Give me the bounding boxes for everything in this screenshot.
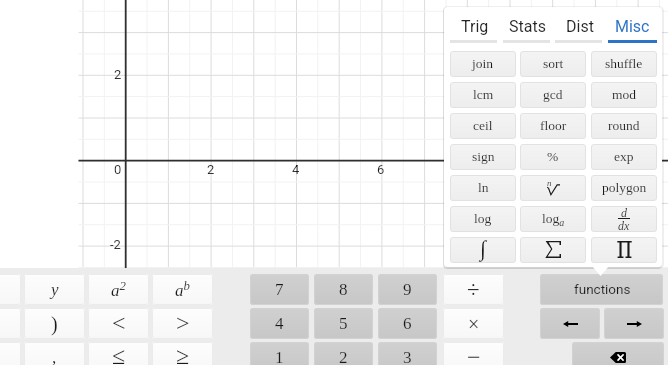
staticText: ∫ xyxy=(480,237,487,260)
other: Move left xyxy=(563,321,578,327)
button[interactable]: loga xyxy=(520,206,586,232)
button[interactable] xyxy=(591,237,657,263)
staticText: 6 xyxy=(403,314,412,333)
button[interactable]: ln xyxy=(450,175,516,201)
staticText: mod xyxy=(612,87,637,102)
button[interactable]: 8 xyxy=(314,274,373,305)
staticText: a2 xyxy=(111,279,126,300)
staticText: 4 xyxy=(275,314,284,333)
staticText: % xyxy=(547,149,559,164)
button[interactable]: × xyxy=(443,308,504,339)
button[interactable]: log xyxy=(450,206,516,232)
staticText: Trig xyxy=(461,17,489,36)
staticText: > xyxy=(176,310,190,337)
staticText: y xyxy=(51,280,59,299)
button[interactable]: < xyxy=(88,308,149,339)
staticText: sign xyxy=(472,149,495,164)
button[interactable]: polygon xyxy=(591,175,657,201)
staticText: 4 xyxy=(292,162,300,177)
button[interactable]: 4 xyxy=(250,308,309,339)
staticText: exp xyxy=(614,149,634,164)
button[interactable]: , xyxy=(24,342,85,365)
button[interactable]: 2 xyxy=(314,342,373,365)
button[interactable]: shuffle xyxy=(591,51,657,77)
staticText: round xyxy=(608,118,640,133)
button[interactable]: exp xyxy=(591,144,657,170)
button[interactable]: 7 xyxy=(250,274,309,305)
button[interactable]: functions xyxy=(540,274,663,305)
staticText: n xyxy=(547,178,552,188)
staticText: ceil xyxy=(473,118,493,133)
staticText: − xyxy=(467,344,481,365)
staticText: , xyxy=(52,348,57,365)
button[interactable]: gcd xyxy=(520,82,586,108)
staticText: join xyxy=(472,56,494,71)
staticText: × xyxy=(468,313,480,335)
button[interactable]: ab xyxy=(152,274,213,305)
staticText: 2 xyxy=(114,67,122,82)
staticText: 8 xyxy=(339,280,348,299)
button[interactable]: 9 xyxy=(378,274,437,305)
button[interactable]: Stats xyxy=(503,11,552,41)
button[interactable]: d xyxy=(591,206,657,232)
staticText: Stats xyxy=(509,17,546,36)
staticText: lcm xyxy=(473,87,494,102)
button[interactable]: Trig xyxy=(450,11,499,41)
button[interactable]: 6 xyxy=(378,308,437,339)
staticText: 1 xyxy=(275,348,284,365)
staticText: Misc xyxy=(615,17,650,36)
staticText: floor xyxy=(540,118,567,133)
staticText: 0 xyxy=(114,162,122,177)
other: Move right xyxy=(627,321,642,327)
button[interactable] xyxy=(520,237,586,263)
button[interactable]: Backspace xyxy=(572,342,664,365)
button[interactable]: 1 xyxy=(250,342,309,365)
staticText: Dist xyxy=(566,17,594,36)
staticText: ) xyxy=(51,313,58,335)
button[interactable]: ceil xyxy=(450,113,516,139)
staticText: d xyxy=(621,206,627,219)
button[interactable]: Move left xyxy=(540,308,600,339)
button[interactable]: y xyxy=(24,274,85,305)
staticText: 9 xyxy=(403,280,412,299)
button[interactable]: floor xyxy=(520,113,586,139)
staticText: gcd xyxy=(543,87,563,102)
staticText: sort xyxy=(543,56,564,71)
button[interactable]: ) xyxy=(24,308,85,339)
button[interactable]: > xyxy=(152,308,213,339)
staticText: ≤ xyxy=(112,343,126,365)
button[interactable]: ∫ xyxy=(450,237,516,263)
button[interactable]: − xyxy=(443,342,504,365)
button[interactable]: mod xyxy=(591,82,657,108)
staticText: -2 xyxy=(110,237,121,252)
staticText: < xyxy=(112,310,126,337)
button[interactable]: . xyxy=(0,342,21,365)
button[interactable]: Misc xyxy=(608,11,657,41)
button[interactable]: a2 xyxy=(88,274,149,305)
button[interactable]: sort xyxy=(520,51,586,77)
staticText: 6 xyxy=(377,162,385,177)
button[interactable]: n xyxy=(520,175,586,201)
button[interactable]: Dist xyxy=(555,11,604,41)
button[interactable]: ( xyxy=(0,308,21,339)
button[interactable]: 5 xyxy=(314,308,373,339)
staticText: ≥ xyxy=(176,343,190,365)
button[interactable]: ≤ xyxy=(88,342,149,365)
button[interactable]: sign xyxy=(450,144,516,170)
staticText: ab xyxy=(175,279,190,300)
staticText: loga xyxy=(542,211,565,228)
button[interactable]: x xyxy=(0,274,21,305)
button[interactable]: ≥ xyxy=(152,342,213,365)
staticText: log xyxy=(474,211,492,226)
button[interactable]: Move right xyxy=(604,308,664,339)
button[interactable]: round xyxy=(591,113,657,139)
staticText: 7 xyxy=(275,280,284,299)
staticText: polygon xyxy=(602,180,647,195)
staticText: ln xyxy=(478,180,489,195)
button[interactable]: 3 xyxy=(378,342,437,365)
button[interactable]: lcm xyxy=(450,82,516,108)
button[interactable]: % xyxy=(520,144,586,170)
button[interactable]: ÷ xyxy=(443,274,504,305)
button[interactable]: join xyxy=(450,51,516,77)
staticText: shuffle xyxy=(605,56,643,71)
